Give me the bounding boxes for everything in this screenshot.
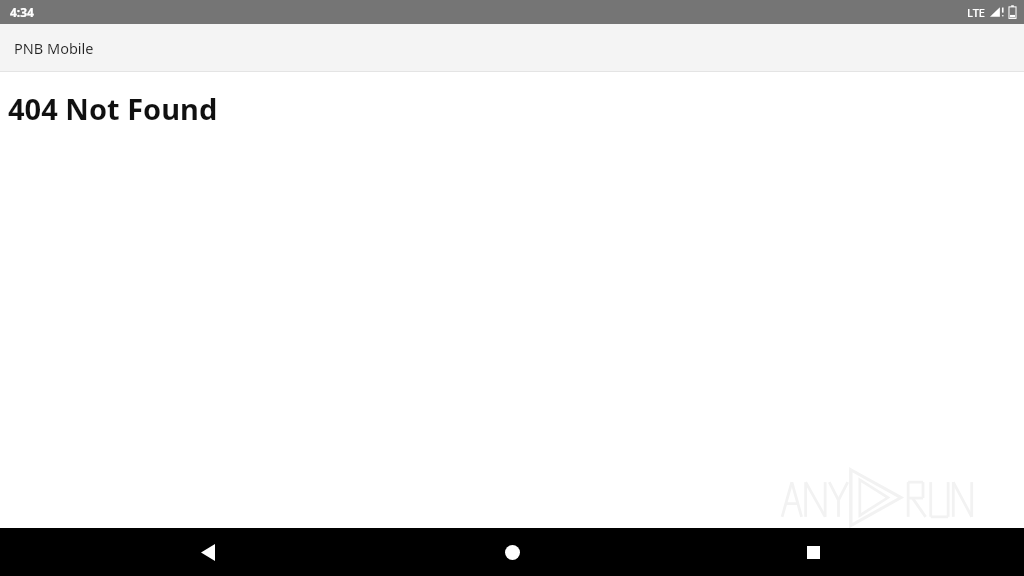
staticText: 404 Not Found (8, 89, 218, 128)
staticText: LTE (967, 5, 985, 20)
button[interactable]: Home (488, 528, 536, 576)
staticText: 4:34 (10, 4, 34, 20)
button[interactable]: Recent apps (789, 528, 837, 576)
staticText: PNB Mobile (14, 38, 94, 58)
button[interactable]: Back (184, 528, 232, 576)
